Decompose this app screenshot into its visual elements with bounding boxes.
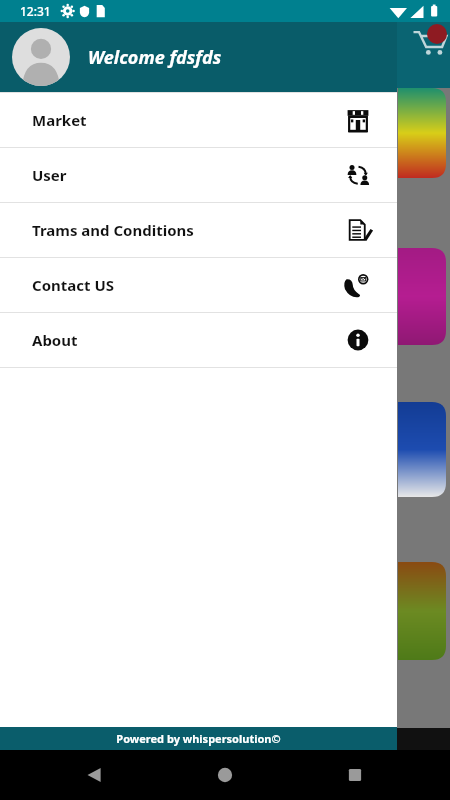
staticText: Trams and Conditions bbox=[32, 220, 194, 240]
button[interactable]: Contact US bbox=[0, 258, 397, 312]
button[interactable]: Welcome fdsfds bbox=[0, 22, 397, 92]
staticText: 12:31 bbox=[20, 3, 51, 19]
staticText: Powered by whispersolution© bbox=[116, 731, 281, 746]
button[interactable]: About bbox=[0, 313, 397, 367]
button[interactable]: Home bbox=[208, 758, 242, 792]
staticText: About bbox=[32, 330, 78, 350]
button[interactable]: Back bbox=[78, 758, 112, 792]
button[interactable]: Market bbox=[0, 93, 397, 147]
button[interactable]: Recent apps bbox=[338, 758, 372, 792]
staticText: Contact US bbox=[32, 275, 115, 295]
staticText: Welcome fdsfds bbox=[88, 45, 222, 70]
staticText: User bbox=[32, 165, 67, 185]
button[interactable]: Trams and Conditions bbox=[0, 203, 397, 257]
staticText: Market bbox=[32, 110, 87, 130]
button[interactable]: User bbox=[0, 148, 397, 202]
